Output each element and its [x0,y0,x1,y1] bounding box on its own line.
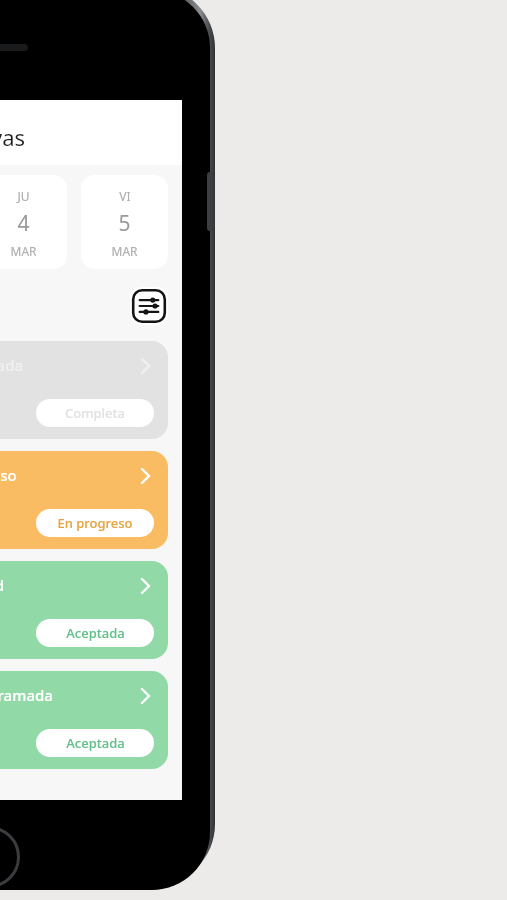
staticText: 5 [118,209,131,238]
staticText: Aceptada [66,734,125,752]
button[interactable]: Completa [36,399,154,427]
staticText: Reparto en curso [0,465,17,485]
staticText: Entrega finalizada [0,355,24,375]
button[interactable]: Entrega finalizada [0,341,168,439]
button[interactable]: Aceptada [36,619,154,647]
staticText: 4 [17,209,30,238]
staticText: Completa [65,404,125,422]
button[interactable]: JU [0,175,67,269]
button[interactable]: Nueva solicitud [0,561,168,659]
button[interactable]: Reparto en curso [0,451,168,549]
staticText: Aceptada [66,624,125,642]
button[interactable]: Aceptada [36,729,154,757]
staticText: Recogida programada [0,685,53,705]
staticText: Tareas activas [0,122,26,152]
staticText: En progreso [57,514,133,532]
button[interactable]: Filtros [130,287,168,325]
staticText: MAR [10,243,37,256]
staticText: JU [17,188,30,204]
button[interactable]: Recogida programada [0,671,168,769]
staticText: Nueva solicitud [0,575,5,595]
staticText: VI [119,188,131,204]
button[interactable]: En progreso [36,509,154,537]
staticText: MAR [111,243,138,256]
button[interactable]: VI [81,175,168,269]
